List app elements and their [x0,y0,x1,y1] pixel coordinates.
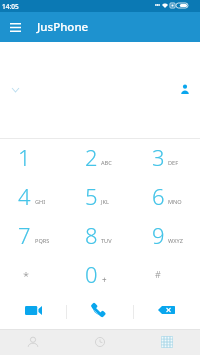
button[interactable]: # [133,256,200,295]
button[interactable]: 2 [66,139,133,178]
button[interactable]: 4 [0,178,66,217]
staticText: MNO [168,198,182,206]
button[interactable]: Add to contacts [177,81,193,97]
button[interactable]: Video call [0,293,66,327]
button[interactable]: Show dial options [7,82,23,98]
staticText: 0 [85,259,98,289]
staticText: 8 [85,220,98,250]
button[interactable]: 0 [66,256,133,295]
staticText: 9 [152,220,165,250]
staticText: 14:05 [2,2,19,11]
button[interactable]: Call [66,293,133,327]
button[interactable]: Delete [133,293,200,327]
staticText: JKL [101,198,109,206]
staticText: TUV [101,237,112,245]
button[interactable]: 7 [0,217,66,256]
button[interactable]: 9 [133,217,200,256]
button[interactable]: Open navigation menu [0,12,30,42]
staticText: 1 [18,142,31,172]
staticText: 2 [85,142,98,172]
staticText: * [23,268,30,283]
staticText: DEF [168,159,179,167]
button[interactable]: Contacts [0,329,66,355]
staticText: 6 [152,181,165,211]
staticText: GHI [35,198,46,206]
button[interactable]: 8 [66,217,133,256]
staticText: + [102,274,107,285]
button[interactable]: 1 [0,139,66,178]
staticText: WXYZ [168,237,183,245]
staticText: # [155,268,161,280]
button[interactable]: 3 [133,139,200,178]
staticText: 4 [18,181,31,211]
button[interactable]: 6 [133,178,200,217]
button[interactable]: * [0,256,66,295]
staticText: PQRS [35,237,50,245]
staticText: 5 [85,181,98,211]
staticText: 7 [18,220,31,250]
button[interactable]: 5 [66,178,133,217]
button[interactable]: Dialpad [133,329,200,355]
staticText: JusPhone [37,19,89,35]
staticText: 3 [152,142,165,172]
staticText: ABC [101,159,112,167]
button[interactable]: Call history [66,329,133,355]
